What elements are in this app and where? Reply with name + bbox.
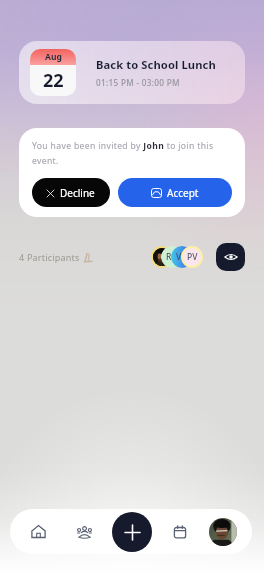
button[interactable]: Add event xyxy=(112,512,152,552)
staticText: You have been invited by John to join th… xyxy=(32,140,232,166)
staticText: R xyxy=(166,251,172,263)
button[interactable]: Preview xyxy=(216,243,245,271)
staticText: Back to School Lunch xyxy=(96,57,216,72)
staticText: 22 xyxy=(43,68,64,93)
button[interactable]: Groups xyxy=(70,509,98,554)
staticText: Aug xyxy=(45,51,62,63)
staticText: Accept xyxy=(167,186,199,200)
button[interactable]: Home xyxy=(24,509,52,554)
button[interactable]: Aug xyxy=(19,41,245,104)
staticText: Decline xyxy=(60,186,95,200)
staticText: V xyxy=(176,251,182,263)
button[interactable]: Calendar xyxy=(166,509,194,554)
staticText: 4 Participants xyxy=(19,251,80,263)
staticText: PV xyxy=(187,251,198,263)
button[interactable]: Decline xyxy=(32,178,110,207)
staticText: 01:15 PM - 03:00 PM xyxy=(96,77,180,88)
button[interactable]: Profile xyxy=(209,509,237,554)
button[interactable]: Accept xyxy=(118,178,232,207)
